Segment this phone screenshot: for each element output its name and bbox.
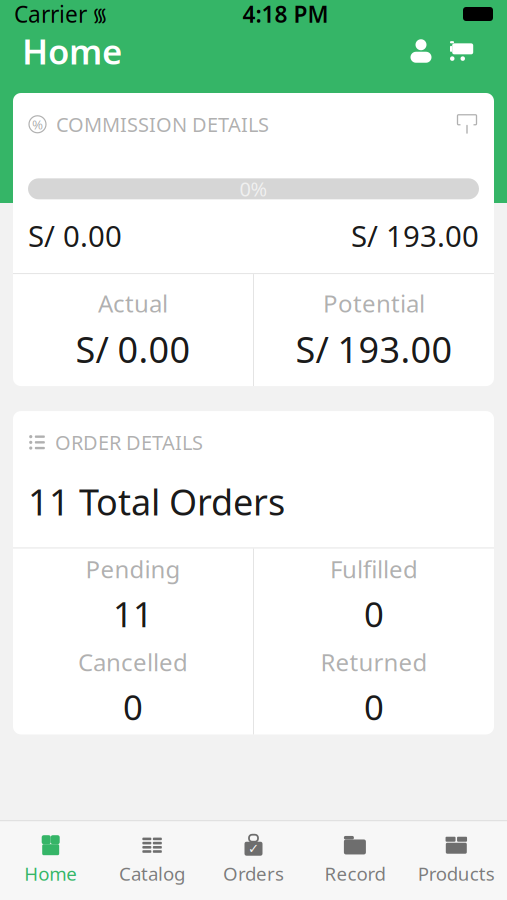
button[interactable]: Home	[0, 827, 101, 892]
staticText: 0	[123, 684, 143, 730]
button[interactable]: Products	[406, 827, 507, 892]
staticText: Fulfilled	[330, 553, 418, 585]
staticText: Orders	[223, 861, 284, 886]
staticText: Catalog	[119, 861, 185, 886]
staticText: Pending	[85, 553, 180, 585]
staticText: 0	[364, 684, 384, 730]
staticText: Actual	[98, 287, 168, 319]
staticText: 0%	[239, 176, 267, 202]
staticText: Record	[324, 861, 385, 886]
button[interactable]: Cart	[441, 32, 485, 69]
staticText: 4:18 PM	[242, 0, 328, 29]
staticText: ✓	[248, 841, 259, 856]
staticText: S/ 0.00	[28, 216, 122, 255]
staticText: S/ 193.00	[295, 325, 452, 373]
staticText: S/ 193.00	[351, 216, 479, 255]
button[interactable]: Catalog	[101, 827, 203, 892]
staticText: 11 Total Orders	[28, 478, 285, 525]
staticText: COMMISSION DETAILS	[56, 111, 269, 138]
staticText: ᯾	[92, 2, 108, 26]
button[interactable]: Filter	[456, 113, 478, 135]
staticText: 11	[113, 591, 153, 637]
button[interactable]: Record	[304, 827, 406, 892]
button[interactable]: Account	[401, 32, 441, 69]
button[interactable]: ✓	[203, 827, 304, 892]
staticText: Products	[418, 861, 495, 886]
staticText: Home	[24, 861, 77, 886]
staticText: ORDER DETAILS	[55, 429, 203, 456]
staticText: Home	[22, 28, 122, 74]
staticText: S/ 0.00	[75, 325, 190, 373]
staticText: 0	[364, 591, 384, 637]
staticText: %	[32, 115, 43, 133]
staticText: Carrier	[14, 0, 87, 29]
staticText: Returned	[320, 646, 427, 678]
staticText: Potential	[323, 287, 425, 319]
staticText: Cancelled	[78, 646, 188, 678]
